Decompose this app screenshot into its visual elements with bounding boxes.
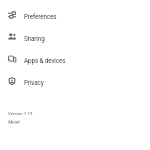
staticText: Privacy: [24, 79, 44, 86]
staticText: Apps & devices: [24, 57, 66, 64]
button[interactable]: Preferences: [0, 5, 150, 27]
staticText: About: [8, 119, 20, 124]
button[interactable]: About: [8, 119, 20, 124]
staticText: Preferences: [24, 13, 57, 20]
staticText: Sharing: [24, 35, 45, 42]
button[interactable]: Apps & devices: [0, 49, 150, 71]
button[interactable]: Sharing: [0, 27, 150, 49]
button[interactable]: Privacy: [0, 71, 150, 93]
staticText: Version 7.19: [8, 111, 33, 116]
